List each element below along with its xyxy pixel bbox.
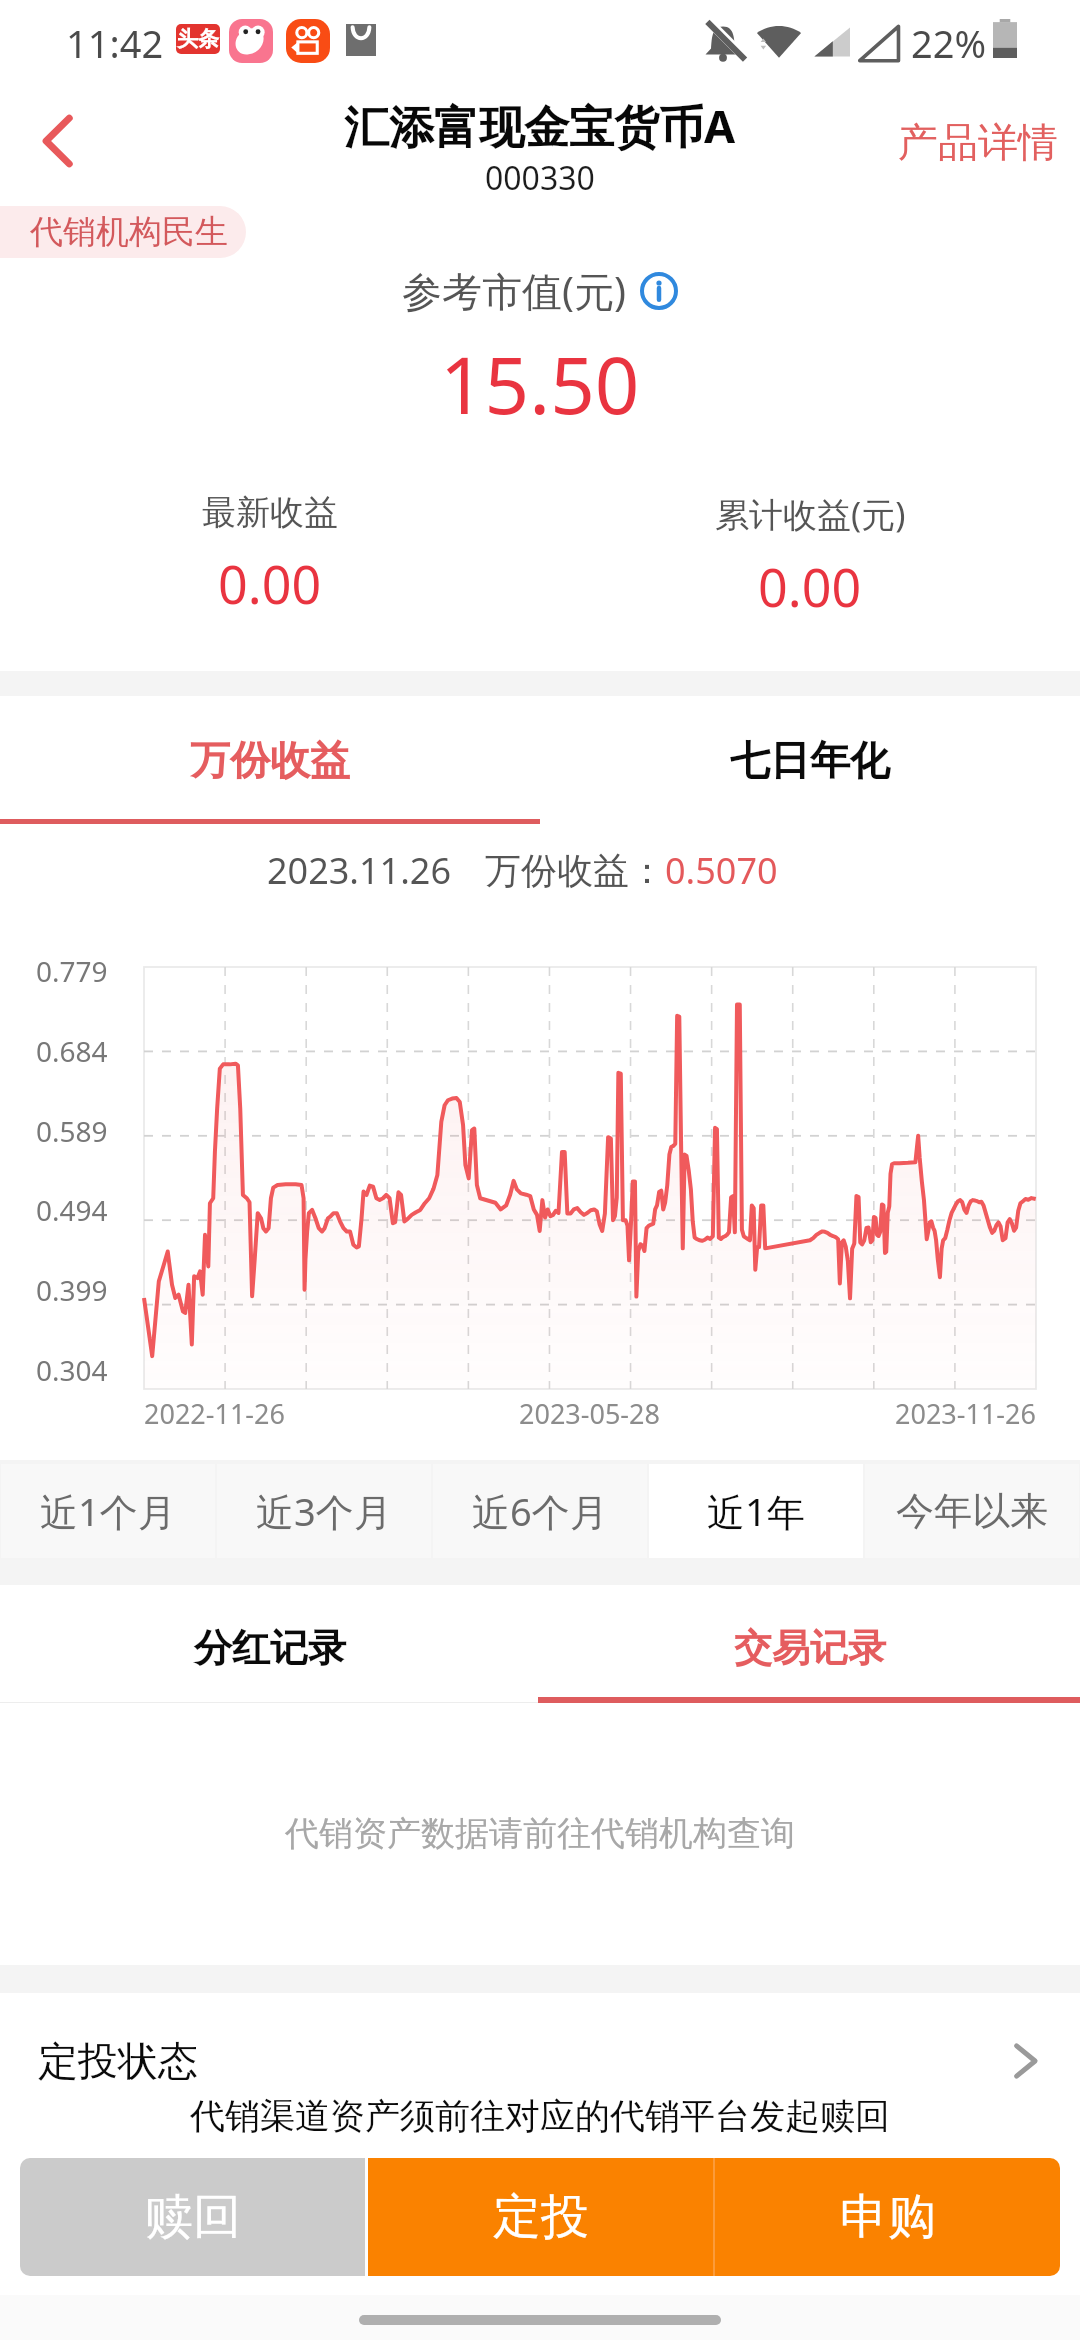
- staticText: 0.399: [36, 1271, 108, 1309]
- button[interactable]: Info about reference market value: [640, 272, 678, 310]
- button[interactable]: 近1个月: [0, 1464, 216, 1558]
- staticText: 0.779: [36, 952, 108, 990]
- staticText: 2023-05-28: [519, 1395, 660, 1432]
- staticText: 近1年: [707, 1485, 805, 1537]
- staticText: 汇添富现金宝货币A: [344, 95, 736, 156]
- staticText: 代销资产数据请前往代销机构查询: [285, 1812, 795, 1855]
- staticText: 分红记录: [194, 1624, 346, 1672]
- button[interactable]: 今年以来: [864, 1464, 1080, 1558]
- button[interactable]: 定投状态: [0, 2006, 1080, 2116]
- staticText: 交易记录: [734, 1624, 886, 1672]
- staticText: 0.5070: [665, 846, 778, 895]
- staticText: 22%: [911, 17, 987, 69]
- staticText: 15.50: [440, 331, 640, 437]
- staticText: 近1个月: [40, 1485, 176, 1537]
- button[interactable]: 近3个月: [216, 1464, 432, 1558]
- button[interactable]: 申购: [715, 2158, 1060, 2276]
- staticText: 七日年化: [730, 735, 890, 785]
- staticText: 近3个月: [256, 1485, 392, 1537]
- staticText: 2023.11.26: [267, 846, 452, 895]
- staticText: 代销渠道资产须前往对应的代销平台发起赎回: [190, 2094, 890, 2138]
- staticText: 000330: [485, 156, 595, 200]
- staticText: 最新收益: [202, 491, 338, 534]
- staticText: 0.00: [758, 551, 862, 622]
- staticText: 万份收益：: [485, 848, 665, 893]
- staticText: 2022-11-26: [144, 1395, 285, 1432]
- staticText: 0.00: [218, 548, 322, 619]
- staticText: 定投: [493, 2187, 589, 2247]
- staticText: 0.684: [36, 1032, 108, 1070]
- staticText: 定投状态: [38, 2036, 198, 2086]
- button[interactable]: 近6个月: [432, 1464, 648, 1558]
- staticText: 万份收益: [190, 735, 350, 785]
- staticText: 代销机构民生: [30, 211, 228, 253]
- staticText: 2023-11-26: [895, 1395, 1036, 1432]
- button[interactable]: 交易记录: [540, 1593, 1080, 1703]
- staticText: 赎回: [145, 2187, 241, 2247]
- staticText: 0.589: [36, 1112, 108, 1150]
- staticText: 0.304: [36, 1351, 108, 1389]
- button[interactable]: 产品详情: [898, 117, 1058, 167]
- staticText: 今年以来: [896, 1487, 1048, 1535]
- button[interactable]: Back: [20, 104, 94, 178]
- button[interactable]: 近1年: [648, 1464, 864, 1558]
- staticText: 产品详情: [898, 117, 1058, 167]
- button[interactable]: 赎回: [20, 2158, 365, 2276]
- staticText: 头条: [177, 26, 219, 52]
- staticText: 累计收益(元): [715, 491, 906, 537]
- button[interactable]: 定投: [368, 2158, 713, 2276]
- staticText: 参考市值(元): [402, 263, 626, 318]
- staticText: 0.494: [36, 1191, 108, 1229]
- button[interactable]: 七日年化: [540, 696, 1080, 824]
- staticText: 近6个月: [472, 1485, 608, 1537]
- staticText: 11:42: [66, 17, 164, 69]
- staticText: 申购: [840, 2187, 936, 2247]
- button[interactable]: 万份收益: [0, 696, 540, 824]
- button[interactable]: 分红记录: [0, 1593, 540, 1703]
